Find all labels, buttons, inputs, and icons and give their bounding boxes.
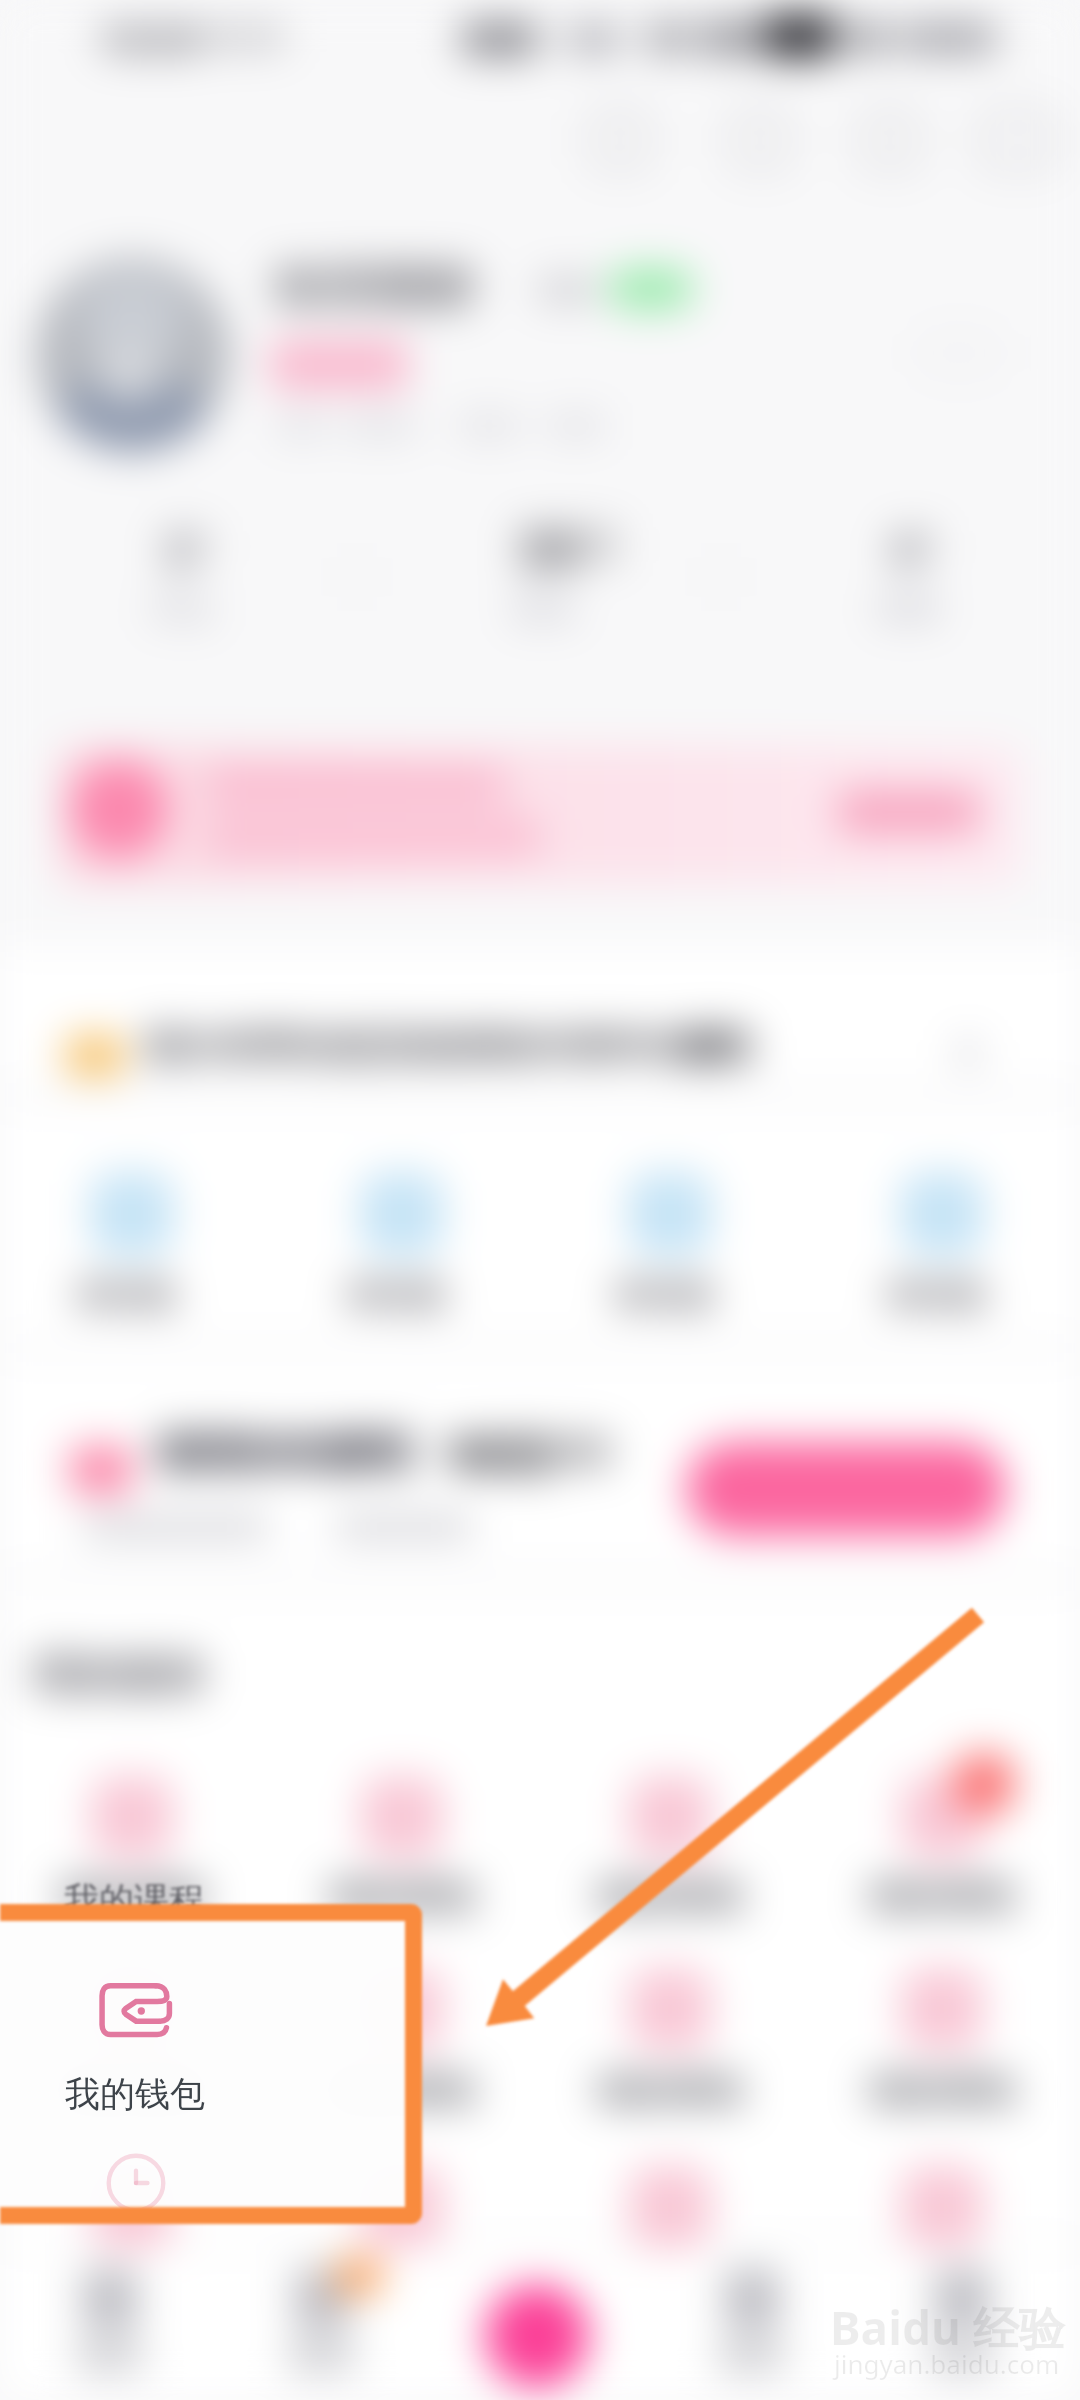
staticText: 首页: [718, 2336, 786, 2379]
button[interactable]: Profile photo: [36, 258, 230, 452]
button[interactable]: Order status: [628, 1172, 712, 1256]
staticText: 首页: [76, 2336, 144, 2379]
button[interactable]: Service: [91, 1776, 173, 1858]
staticText: 10:09: [100, 14, 198, 66]
button[interactable]: Order status: [90, 1172, 174, 1256]
staticText: 粉丝: [512, 590, 576, 630]
button[interactable]: Service: [91, 2166, 173, 2248]
staticText: 待付款: [886, 1274, 988, 1317]
staticText: 叶子同学: [276, 258, 476, 321]
button[interactable]: Service: [361, 2166, 443, 2248]
button[interactable]: Service: [629, 1776, 711, 1858]
staticText: 我的课程: [328, 2068, 476, 2115]
button[interactable]: Service: [901, 1968, 983, 2050]
staticText: 待付款: [614, 1274, 716, 1317]
staticText: 我的课程: [64, 1878, 204, 1922]
staticText: 2: [164, 518, 192, 583]
staticText: 我的课程: [868, 2068, 1016, 2115]
staticText: 首页: [928, 2336, 996, 2379]
staticText: jingyan.baidu.com: [834, 2346, 1060, 2381]
button[interactable]: Service: [91, 1968, 173, 2050]
button[interactable]: Create: [485, 2284, 589, 2388]
staticText: 我的课程: [596, 2266, 744, 2313]
staticText: 我的课程: [58, 1874, 206, 1921]
staticText: Baidu 经验: [830, 2296, 1065, 2359]
staticText: 38: [518, 514, 578, 585]
staticText: 新人专享礼包已发放请在卡券中心查: [146, 1024, 722, 1069]
staticText: 我的课程: [58, 2068, 206, 2115]
button[interactable]: Service: [901, 2166, 983, 2248]
staticText: 我的课程: [596, 2068, 744, 2115]
button[interactable]: [0, 980, 1080, 1090]
staticText: 我的课程: [868, 2266, 1016, 2313]
staticText: 邀请好友赚现: [156, 1426, 414, 1480]
staticText: 我的课程: [868, 1874, 1016, 1921]
button[interactable]: Service: [629, 2166, 711, 2248]
staticText: 我的服务: [32, 1648, 208, 1703]
staticText: 待付款: [346, 1274, 448, 1317]
button[interactable]: Order status: [360, 1172, 444, 1256]
button[interactable]: Service: [361, 1968, 443, 2050]
button[interactable]: 我的钱包: [58, 1978, 218, 2118]
button[interactable]: Service: [629, 1968, 711, 2050]
staticText: 我的课程: [58, 2266, 206, 2313]
staticText: 我的课程: [328, 2266, 476, 2313]
button[interactable]: Tab: [266, 2258, 378, 2388]
button[interactable]: Service: [361, 1776, 443, 1858]
button[interactable]: Join membership: [838, 790, 980, 834]
button[interactable]: Tab: [906, 2258, 1018, 2388]
staticText: 我的课程: [596, 1874, 744, 1921]
staticText: 4: [890, 518, 918, 583]
staticText: ·88元: [444, 1426, 549, 1485]
button[interactable]: Order status: [900, 1172, 984, 1256]
button[interactable]: Invite friends: [686, 1442, 1006, 1536]
staticText: 领取: [680, 1024, 754, 1071]
staticText: 待付款: [76, 1274, 178, 1317]
button[interactable]: Tab: [54, 2258, 166, 2388]
staticText: 我的钱包: [65, 2072, 205, 2116]
button[interactable]: Tab: [696, 2258, 808, 2388]
staticText: 我的课程: [328, 1874, 476, 1921]
staticText: 首页: [288, 2336, 356, 2379]
button[interactable]: [58, 746, 1022, 884]
button[interactable]: Service: [901, 1776, 983, 1858]
